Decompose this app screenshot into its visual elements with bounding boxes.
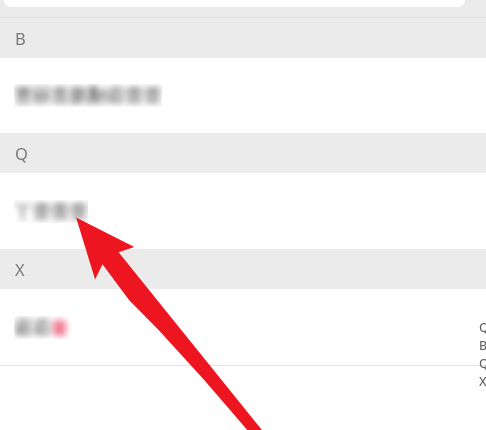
button[interactable]: Index X (479, 372, 486, 390)
staticText: Q (479, 355, 486, 372)
staticText: 丫蕾蕾蕾 (14, 200, 88, 223)
button[interactable]: 曹丽蕾鹏翻霸蕾蕾 (0, 58, 486, 133)
staticText: 曹丽蕾鹏翻霸蕾蕾 (14, 84, 162, 107)
staticText: Q (479, 319, 486, 336)
staticText: B (15, 27, 26, 49)
button[interactable]: 丫蕾蕾蕾 (0, 173, 486, 249)
button[interactable]: Q (0, 133, 486, 173)
staticText: X (479, 373, 486, 390)
staticText: 霸霸 (14, 316, 51, 339)
staticText: X (15, 258, 25, 280)
button[interactable]: X (0, 249, 486, 289)
staticText: B (479, 337, 486, 354)
button[interactable]: B (0, 18, 486, 58)
staticText: Q (15, 142, 28, 164)
button[interactable]: Index Q (479, 354, 486, 372)
button[interactable]: 霸霸 (0, 289, 486, 365)
button[interactable]: Index B (479, 336, 486, 354)
button[interactable]: Index Q (479, 318, 486, 336)
